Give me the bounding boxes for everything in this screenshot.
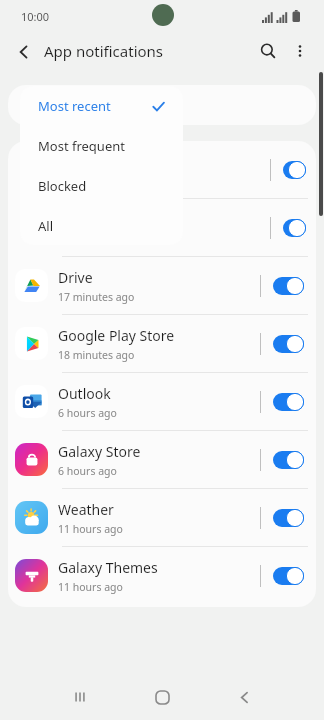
staticText: Weather [58, 500, 114, 519]
button[interactable]: Most recent [20, 86, 183, 126]
button[interactable]: Drive [8, 257, 316, 314]
button[interactable]: Toggle notifications [273, 393, 304, 411]
staticText: Outlook [58, 384, 111, 403]
button[interactable]: Search [254, 37, 282, 65]
staticText: Galaxy Store [58, 442, 141, 461]
button[interactable]: All [20, 206, 183, 245]
button[interactable]: Recents [60, 677, 100, 717]
staticText: Drive [58, 268, 93, 287]
staticText: 17 minutes ago [58, 290, 135, 304]
button[interactable]: Toggle notifications [273, 335, 304, 353]
button[interactable]: Galaxy Themes [8, 547, 316, 604]
button[interactable]: More options [286, 37, 314, 65]
button[interactable]: Google Play Store [8, 315, 316, 372]
button[interactable]: Toggle notifications [273, 567, 304, 585]
staticText: Blocked [38, 177, 87, 195]
button[interactable]: Blocked [20, 166, 183, 206]
staticText: 6 hours ago [58, 406, 117, 420]
button[interactable]: Toggle notifications [273, 451, 304, 469]
staticText: Most recent [38, 97, 111, 115]
button[interactable]: Most frequent [20, 126, 183, 166]
button[interactable]: Toggle notifications [283, 161, 306, 179]
staticText: Most frequent [38, 137, 125, 155]
button[interactable]: Toggle notifications [8, 199, 316, 256]
staticText: 10:00 [21, 9, 50, 24]
staticText: 6 hours ago [58, 464, 117, 478]
staticText: 11 hours ago [58, 522, 123, 536]
staticText: 11 hours ago [58, 580, 123, 594]
button[interactable]: Back [10, 38, 38, 66]
button[interactable]: Home [142, 677, 182, 717]
staticText: App notifications [44, 41, 164, 61]
button[interactable]: Weather [8, 489, 316, 546]
button[interactable]: Back [224, 677, 264, 717]
button[interactable]: Toggle notifications [8, 141, 316, 198]
staticText: Google Play Store [58, 326, 175, 345]
button[interactable]: Toggle notifications [273, 277, 304, 295]
button[interactable]: Toggle notifications [283, 219, 306, 237]
button[interactable]: Outlook [8, 373, 316, 430]
button[interactable]: Toggle notifications [273, 509, 304, 527]
staticText: 18 minutes ago [58, 348, 135, 362]
button[interactable]: Galaxy Store [8, 431, 316, 488]
staticText: All [38, 217, 54, 235]
staticText: Galaxy Themes [58, 558, 158, 577]
